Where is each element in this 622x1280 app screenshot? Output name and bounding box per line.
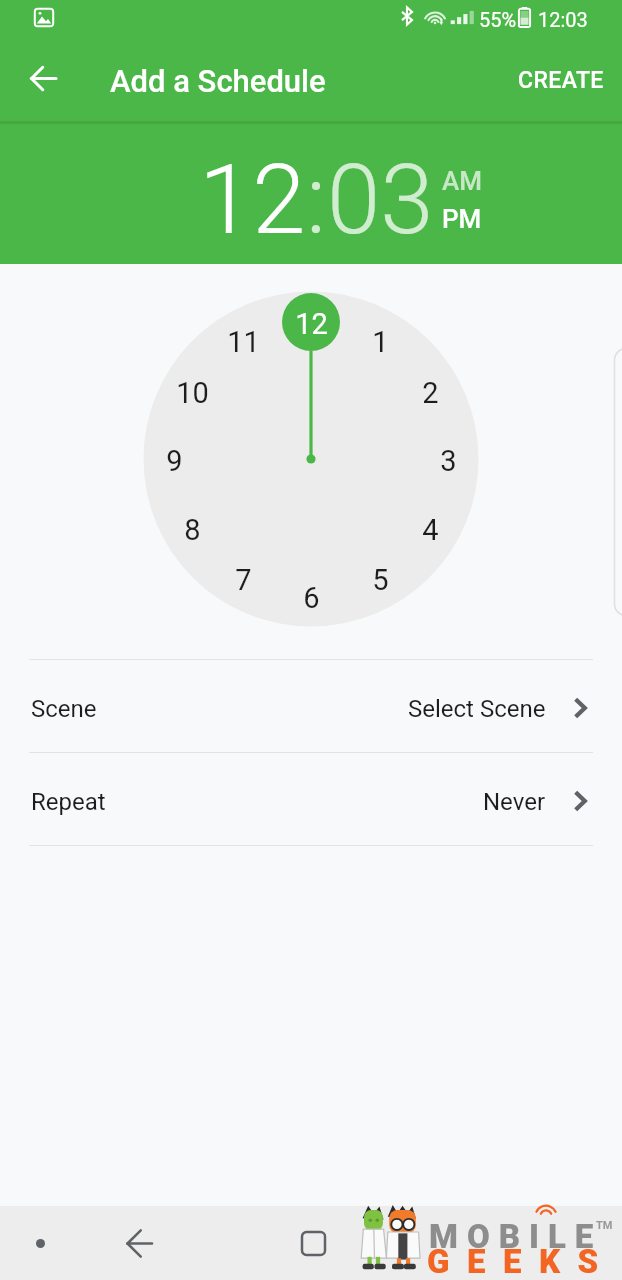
staticText: 5	[372, 563, 389, 597]
staticText: CREATE	[518, 67, 604, 94]
button[interactable]: Menu	[6, 1206, 74, 1280]
staticText: Select Scene	[408, 695, 546, 723]
button[interactable]: Recent apps	[263, 1206, 363, 1280]
button[interactable]: CREATE	[500, 53, 622, 108]
button[interactable]: 10	[163, 364, 221, 422]
button[interactable]: 12	[282, 295, 340, 353]
staticText: Repeat	[31, 788, 106, 816]
staticText: 2	[422, 376, 439, 410]
button[interactable]: 3	[419, 432, 477, 490]
staticText: MOBILE	[429, 1217, 603, 1256]
staticText: 12:03	[538, 8, 588, 31]
button[interactable]: 1	[351, 313, 409, 371]
staticText: 12	[295, 307, 328, 341]
button[interactable]: 7	[214, 551, 272, 609]
staticText: 7	[235, 563, 252, 597]
button[interactable]: 03	[327, 144, 434, 257]
button[interactable]: Repeat	[0, 753, 622, 845]
staticText: Scene	[31, 695, 97, 723]
staticText: 1	[372, 325, 389, 359]
staticText: 55%	[479, 8, 517, 31]
button[interactable]: 5	[351, 551, 409, 609]
button[interactable]: Scene	[0, 660, 622, 752]
button[interactable]: 4	[401, 501, 459, 559]
staticText: Add a Schedule	[110, 63, 326, 99]
button[interactable]: PM	[442, 204, 482, 234]
staticText: :	[306, 144, 327, 257]
button[interactable]: AM	[442, 166, 482, 196]
button[interactable]: 9	[145, 432, 203, 490]
button[interactable]: Navigate up	[20, 55, 66, 101]
staticText: 6	[303, 581, 320, 615]
button[interactable]: Back	[89, 1206, 189, 1280]
button[interactable]: 2	[401, 364, 459, 422]
staticText: Never	[483, 788, 546, 816]
staticText: 11	[227, 325, 260, 359]
staticText: 3	[440, 444, 457, 478]
staticText: 10	[176, 376, 209, 410]
staticText: GEEKS	[427, 1242, 616, 1280]
button[interactable]: 12	[199, 144, 306, 257]
staticText: 4	[422, 513, 439, 547]
staticText: TM	[596, 1219, 613, 1232]
button[interactable]: 11	[214, 313, 272, 371]
button[interactable]: 6	[282, 569, 340, 627]
staticText: 8	[184, 513, 201, 547]
staticText: 9	[166, 444, 183, 478]
button[interactable]: 8	[163, 501, 221, 559]
